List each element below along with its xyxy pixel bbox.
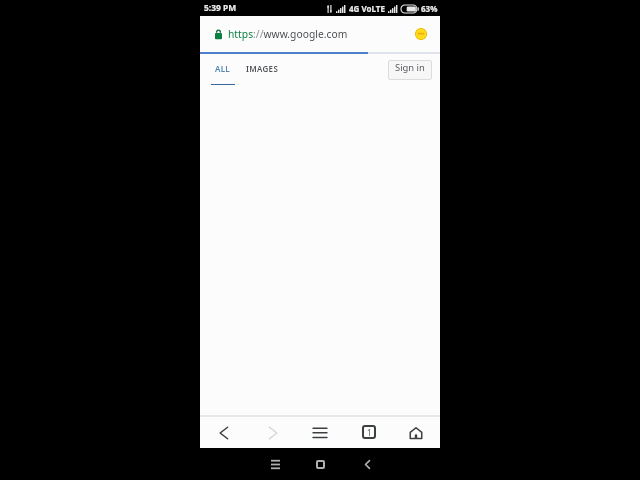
button[interactable]: Page loading xyxy=(415,28,427,40)
button[interactable]: Back xyxy=(214,423,234,443)
button[interactable]: Home xyxy=(309,453,331,475)
button[interactable]: Menu xyxy=(310,423,330,443)
button[interactable]: Tabs xyxy=(358,422,378,442)
staticText: 1 xyxy=(367,427,372,438)
staticText: 4G VoLTE xyxy=(349,3,385,14)
staticText: 5:39 PM xyxy=(204,2,237,13)
staticText: IMAGES xyxy=(246,63,279,74)
staticText: 63% xyxy=(421,3,438,14)
button[interactable]: Back xyxy=(356,453,378,475)
staticText: https://www.google.com xyxy=(228,27,348,41)
button[interactable]: Search or type web address xyxy=(208,20,406,48)
button[interactable]: IMAGES xyxy=(246,63,279,74)
button[interactable]: Forward xyxy=(263,423,283,443)
button[interactable]: Home xyxy=(406,423,426,443)
staticText: Sign in xyxy=(395,61,425,74)
button[interactable]: Recents xyxy=(264,453,286,475)
button[interactable]: ALL xyxy=(211,54,235,85)
button[interactable]: Sign in xyxy=(388,60,432,80)
staticText: ALL xyxy=(215,63,231,74)
